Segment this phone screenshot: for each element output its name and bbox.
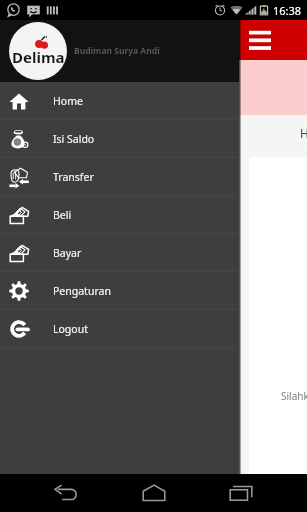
button[interactable]: Pengaturan bbox=[0, 272, 239, 309]
button[interactable]: Back bbox=[44, 474, 88, 512]
staticText: Isi Saldo bbox=[53, 132, 95, 146]
staticText: Bayar bbox=[53, 246, 82, 260]
button[interactable]: Bayar bbox=[0, 234, 239, 271]
button[interactable]: Home bbox=[0, 82, 239, 119]
staticText: Silahkan pilih menu bbox=[281, 389, 307, 403]
staticText: Delima bbox=[12, 47, 65, 67]
button[interactable]: Logout bbox=[0, 310, 239, 347]
staticText: Budiman Surya Andi bbox=[74, 45, 160, 57]
staticText: Pengaturan bbox=[53, 284, 111, 298]
staticText: Transfer bbox=[53, 170, 94, 184]
staticText: Beli bbox=[53, 208, 72, 222]
button[interactable]: Home bbox=[132, 474, 176, 512]
staticText: 16:38 bbox=[273, 3, 302, 18]
staticText: Home bbox=[53, 94, 83, 108]
button[interactable]: Recents bbox=[219, 474, 263, 512]
button[interactable]: Transfer bbox=[0, 158, 239, 195]
staticText: Home bbox=[300, 125, 307, 141]
button[interactable]: Isi Saldo bbox=[0, 120, 239, 157]
staticText: Logout bbox=[53, 322, 88, 336]
button[interactable]: Beli bbox=[0, 196, 239, 233]
button[interactable]: Open navigation drawer bbox=[240, 20, 280, 60]
